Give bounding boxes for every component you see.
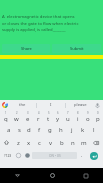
staticText: u — [66, 115, 70, 123]
button[interactable]: l — [88, 123, 99, 136]
button[interactable]: Home — [35, 168, 69, 183]
button[interactable]: b — [56, 136, 67, 149]
button[interactable]: please — [66, 100, 94, 110]
staticText: 4 — [38, 111, 40, 115]
button[interactable]: Backspace — [89, 136, 103, 149]
staticText: ?123 — [4, 153, 12, 158]
staticText: c — [38, 139, 41, 147]
button[interactable]: Enter — [90, 152, 98, 160]
staticText: 0 — [97, 111, 99, 115]
staticText: v — [49, 139, 53, 147]
button[interactable]: 0 — [93, 110, 103, 123]
staticText: y — [56, 115, 60, 123]
button[interactable]: g — [44, 123, 55, 136]
button[interactable]: 9 — [83, 110, 93, 123]
button[interactable]: 4 — [33, 110, 43, 123]
staticText: r — [37, 115, 40, 123]
button[interactable]: Share — [2, 44, 50, 53]
button[interactable]: Shift — [0, 136, 13, 149]
staticText: 1 — [5, 111, 7, 115]
staticText: Share — [21, 46, 32, 51]
button[interactable]: Back — [0, 168, 35, 183]
staticText: o — [86, 115, 90, 123]
staticText: 2 — [16, 111, 18, 115]
button[interactable]: d — [24, 123, 34, 136]
button[interactable]: k — [77, 123, 88, 136]
staticText: b — [60, 139, 64, 147]
button[interactable]: j — [66, 123, 77, 136]
button[interactable]: m — [78, 136, 89, 149]
staticText: a — [7, 126, 11, 134]
staticText: x — [27, 139, 31, 147]
button[interactable]: Voice input — [94, 102, 101, 109]
button[interactable]: 6 — [53, 110, 63, 123]
staticText: 5 — [48, 111, 50, 115]
button[interactable]: z — [13, 136, 23, 149]
button[interactable]: . — [77, 149, 86, 162]
button[interactable]: s — [14, 123, 24, 136]
staticText: h — [59, 126, 63, 134]
staticText: p — [96, 115, 100, 123]
button[interactable]: Keyboard settings — [23, 149, 32, 162]
button[interactable]: 7 — [63, 110, 73, 123]
staticText: d — [27, 126, 31, 134]
staticText: ON • US — [49, 154, 61, 158]
staticText: 6 — [57, 111, 59, 115]
button[interactable]: Space — [32, 152, 77, 159]
button[interactable]: f — [34, 123, 44, 136]
staticText: w — [14, 115, 19, 123]
staticText: . — [81, 152, 83, 159]
staticText: z — [17, 139, 20, 147]
button[interactable]: I — [37, 100, 65, 110]
staticText: Submit — [70, 46, 84, 51]
button[interactable]: 3 — [22, 110, 33, 123]
staticText: i — [77, 115, 79, 123]
staticText: please — [74, 102, 87, 108]
button[interactable]: Google — [2, 102, 8, 108]
staticText: g — [48, 126, 52, 134]
button[interactable]: n — [67, 136, 78, 149]
button[interactable]: Recent apps — [69, 168, 103, 183]
staticText: s — [18, 126, 21, 134]
button[interactable]: 5 — [43, 110, 53, 123]
button[interactable]: h — [55, 123, 66, 136]
staticText: k — [81, 126, 85, 134]
staticText: l — [93, 126, 95, 134]
button[interactable]: v — [45, 136, 56, 149]
staticText: 9 — [87, 111, 89, 115]
staticText: 7 — [67, 111, 69, 115]
button[interactable]: c — [34, 136, 45, 149]
staticText: m — [81, 139, 87, 147]
staticText: e — [26, 115, 30, 123]
button[interactable]: ?123 — [1, 149, 14, 162]
button[interactable]: 2 — [11, 110, 22, 123]
button[interactable]: Emoji — [14, 149, 23, 162]
staticText: A electromagnetic device that opens or c… — [2, 14, 101, 32]
button[interactable]: Submit — [52, 44, 101, 53]
button[interactable]: 1 — [0, 110, 11, 123]
button[interactable]: a — [4, 123, 14, 136]
staticText: t — [47, 115, 50, 123]
staticText: q — [4, 115, 8, 123]
staticText: 8 — [77, 111, 79, 115]
button[interactable]: x — [23, 136, 34, 149]
staticText: 3 — [27, 111, 29, 115]
button[interactable]: 8 — [73, 110, 83, 123]
staticText: f — [38, 126, 41, 134]
staticText: the — [19, 102, 26, 108]
staticText: j — [71, 126, 73, 134]
staticText: I — [50, 102, 52, 108]
staticText: n — [71, 139, 75, 147]
button[interactable]: the — [8, 100, 36, 110]
